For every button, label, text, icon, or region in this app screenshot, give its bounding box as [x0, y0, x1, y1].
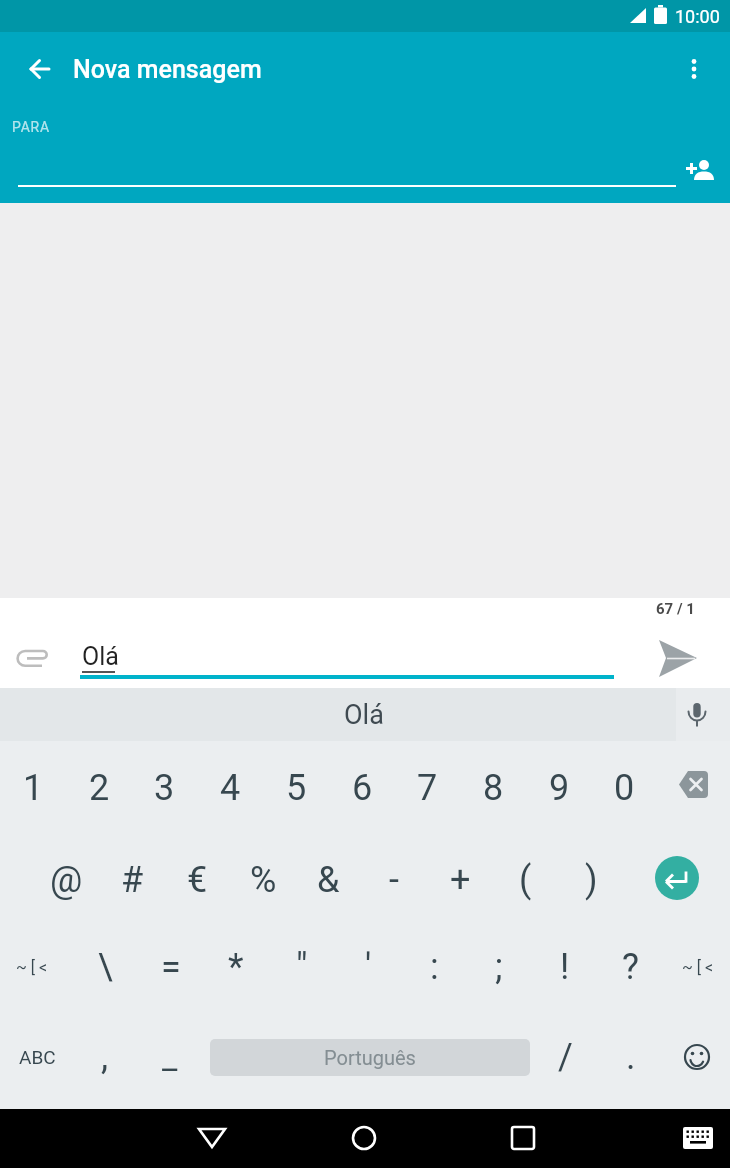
button[interactable]: . [600, 1013, 662, 1101]
staticText: - [389, 859, 399, 901]
staticText: # [121, 859, 144, 901]
button[interactable] [18, 47, 62, 91]
button[interactable]: € [166, 836, 228, 924]
button[interactable]: 7 [395, 744, 459, 832]
button[interactable]: 3 [132, 744, 196, 832]
staticText: Olá [82, 642, 119, 671]
button[interactable]: 8 [461, 744, 525, 832]
staticText: " [296, 946, 308, 988]
staticText: & [317, 859, 340, 901]
button[interactable]: ~ [ < [1, 923, 63, 1011]
button[interactable]: 2 [67, 744, 131, 832]
staticText: + [450, 859, 471, 901]
button[interactable]: ( [494, 836, 556, 924]
button[interactable]: * [205, 923, 267, 1011]
button[interactable]: 6 [330, 744, 394, 832]
button[interactable] [0, 688, 676, 741]
button[interactable]: \ [74, 923, 136, 1011]
staticText: / [558, 1036, 573, 1078]
staticText: 0 [614, 767, 635, 809]
staticText: 1 [23, 767, 44, 809]
button[interactable]: = [140, 923, 202, 1011]
button[interactable]: ? [600, 923, 662, 1011]
button[interactable]: : [403, 923, 465, 1011]
button[interactable]: @ [35, 836, 97, 924]
staticText: ( [519, 859, 532, 901]
button[interactable]: Olá [82, 636, 614, 676]
button[interactable]: ~ [ < [667, 923, 729, 1011]
button[interactable] [18, 140, 676, 200]
staticText: 3 [154, 767, 175, 809]
button[interactable]: ; [468, 923, 530, 1011]
button[interactable]: & [297, 836, 359, 924]
staticText: ~ [ < [682, 958, 714, 977]
staticText: @ [50, 859, 83, 901]
staticText: 5 [286, 767, 307, 809]
staticText: _ [162, 1037, 178, 1077]
button[interactable] [680, 152, 722, 192]
staticText: ? [622, 946, 640, 988]
button[interactable] [664, 744, 728, 832]
staticText: 10:00 [675, 6, 720, 27]
staticText: ~ [ < [16, 958, 48, 977]
button[interactable]: / [534, 1013, 596, 1101]
button[interactable] [672, 47, 716, 91]
staticText: . [626, 1036, 636, 1078]
button[interactable]: Português [210, 1039, 530, 1076]
button[interactable]: 0 [592, 744, 656, 832]
button[interactable]: ' [337, 923, 399, 1011]
staticText: 7 [417, 767, 438, 809]
staticText: 67 / 1 [656, 600, 695, 618]
button[interactable] [672, 1112, 724, 1164]
staticText: PARA [12, 119, 50, 135]
staticText: 2 [89, 767, 110, 809]
button[interactable]: 9 [527, 744, 591, 832]
staticText: , [101, 1036, 109, 1078]
staticText: € [187, 859, 208, 901]
staticText: % [250, 859, 277, 901]
staticText: ! [560, 946, 570, 988]
staticText: ; [495, 946, 503, 988]
button[interactable]: , [74, 1013, 136, 1101]
button[interactable]: ABC [2, 1013, 72, 1101]
staticText: 9 [549, 767, 570, 809]
button[interactable]: _ [139, 1013, 201, 1101]
button[interactable]: ) [560, 836, 622, 924]
button[interactable] [666, 1013, 728, 1101]
button[interactable]: " [271, 923, 333, 1011]
button[interactable]: 5 [264, 744, 328, 832]
button[interactable] [652, 632, 704, 684]
staticText: Português [324, 1046, 416, 1069]
button[interactable]: 4 [198, 744, 262, 832]
button[interactable]: 1 [1, 744, 65, 832]
staticText: = [161, 946, 181, 988]
button[interactable] [182, 1108, 242, 1168]
staticText: 4 [220, 767, 241, 809]
staticText: * [228, 946, 244, 988]
staticText: ABC [19, 1046, 56, 1068]
button[interactable]: + [429, 836, 491, 924]
button[interactable] [676, 688, 730, 741]
staticText: \ [98, 946, 113, 988]
staticText: 8 [483, 767, 504, 809]
staticText: Nova mensagem [73, 55, 262, 84]
button[interactable] [14, 640, 56, 678]
staticText: ' [365, 946, 372, 988]
staticText: 6 [352, 767, 373, 809]
staticText: ) [585, 859, 598, 901]
button[interactable]: - [363, 836, 425, 924]
staticText: Olá [344, 699, 384, 731]
button[interactable]: ! [534, 923, 596, 1011]
button[interactable]: # [101, 836, 163, 924]
button[interactable] [655, 856, 699, 900]
button[interactable] [493, 1108, 553, 1168]
button[interactable] [334, 1108, 394, 1168]
button[interactable]: % [232, 836, 294, 924]
staticText: : [430, 946, 439, 988]
